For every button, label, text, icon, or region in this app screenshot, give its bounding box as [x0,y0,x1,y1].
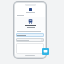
button[interactable] [16,43,44,54]
button[interactable] [15,17,45,30]
button[interactable]: Open chat support [42,48,49,55]
button[interactable]: App logo [29,8,32,11]
button[interactable] [16,33,44,37]
button[interactable] [16,38,44,42]
